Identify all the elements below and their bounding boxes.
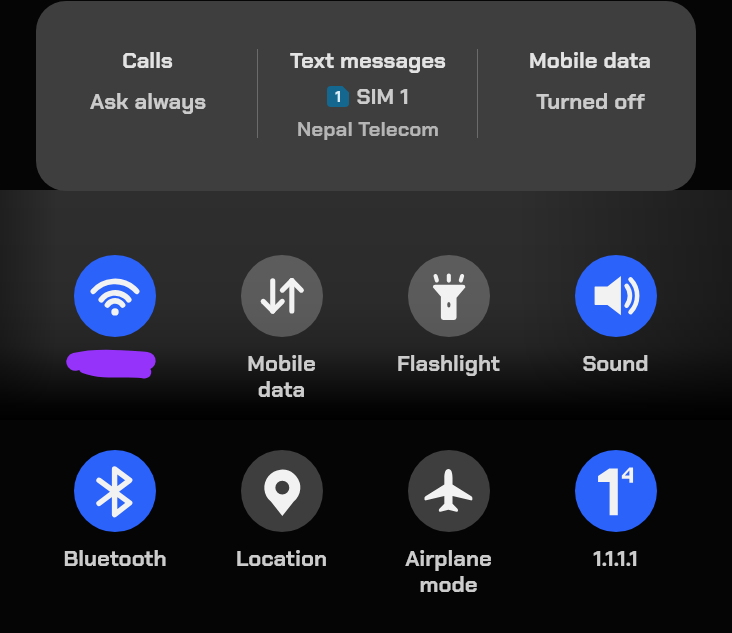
staticText: Turned off — [536, 87, 645, 116]
staticText: Mobile data — [529, 46, 651, 75]
staticText: Text messages — [290, 46, 446, 75]
button[interactable]: Airplane mode — [365, 450, 532, 599]
staticText: 1 — [335, 87, 341, 107]
staticText: Sound — [582, 349, 649, 378]
button[interactable]: Flashlight — [365, 255, 532, 378]
staticText: Ask always — [90, 87, 206, 116]
button[interactable]: Location — [198, 450, 365, 573]
staticText: Nepal Telecom — [297, 116, 439, 143]
staticText: SIM 1 — [356, 82, 409, 111]
button[interactable]: 1.1.1.1 — [532, 450, 699, 573]
staticText: Location — [236, 544, 327, 573]
staticText: Bluetooth — [63, 544, 167, 573]
staticText: 1.1.1.1 — [593, 544, 638, 573]
button[interactable]: Sound — [532, 255, 699, 378]
staticText: Flashlight — [397, 349, 500, 378]
button[interactable]: Mobile data — [198, 255, 365, 404]
button[interactable]: Bluetooth — [31, 450, 198, 573]
button[interactable]: Calls — [36, 1, 696, 191]
staticText: Calls — [122, 46, 173, 75]
button[interactable]: Wi-Fi — [31, 255, 198, 381]
staticText: Mobile data — [247, 349, 316, 404]
staticText: Airplane mode — [405, 544, 492, 599]
